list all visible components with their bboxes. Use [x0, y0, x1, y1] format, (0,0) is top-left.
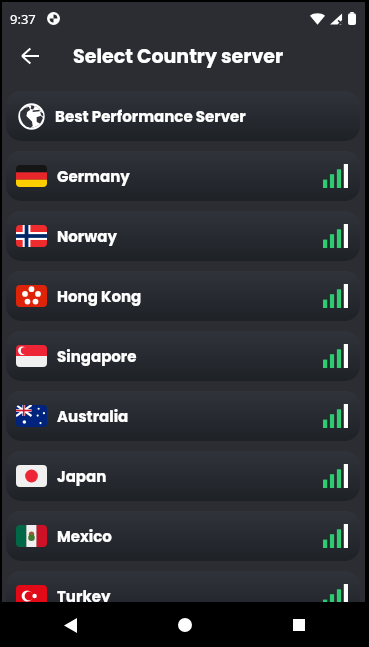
button[interactable]: Back [12, 38, 48, 74]
button[interactable]: Hong Kong [6, 271, 360, 321]
staticText: Hong Kong [57, 286, 142, 307]
staticText: Australia [57, 406, 129, 427]
staticText: Select Country server [73, 43, 284, 70]
button[interactable]: Turkey [6, 571, 360, 621]
staticText: Japan [57, 466, 107, 487]
staticText: Turkey [57, 586, 111, 607]
button[interactable]: Best Performance Server [6, 91, 360, 141]
button[interactable]: Australia [6, 391, 360, 441]
button[interactable]: Germany [6, 151, 360, 201]
button[interactable]: Norway [6, 211, 360, 261]
staticText: Best Performance Server [55, 106, 246, 127]
button[interactable]: Japan [6, 451, 360, 501]
button[interactable]: Recents [279, 605, 319, 645]
button[interactable]: Singapore [6, 331, 360, 381]
staticText: Singapore [57, 346, 137, 367]
staticText: 9:37 [10, 10, 36, 28]
button[interactable]: Home [165, 605, 205, 645]
button[interactable]: Back [50, 605, 90, 645]
button[interactable]: Mexico [6, 511, 360, 561]
staticText: Norway [57, 226, 117, 247]
staticText: Mexico [57, 526, 112, 547]
staticText: Germany [57, 166, 130, 187]
